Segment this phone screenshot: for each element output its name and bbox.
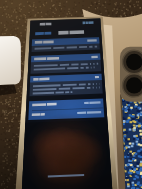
button[interactable]: Back to Settings bbox=[33, 30, 57, 39]
button[interactable]: Cycle Count bbox=[31, 73, 100, 82]
button[interactable]: Battery Health Normal bbox=[32, 37, 100, 46]
button[interactable]: First Use September 2024 bbox=[28, 110, 98, 119]
button[interactable]: Manufacture Date June 2024 bbox=[29, 100, 99, 109]
button[interactable]: Maximum Capacity 93% bbox=[32, 54, 100, 63]
